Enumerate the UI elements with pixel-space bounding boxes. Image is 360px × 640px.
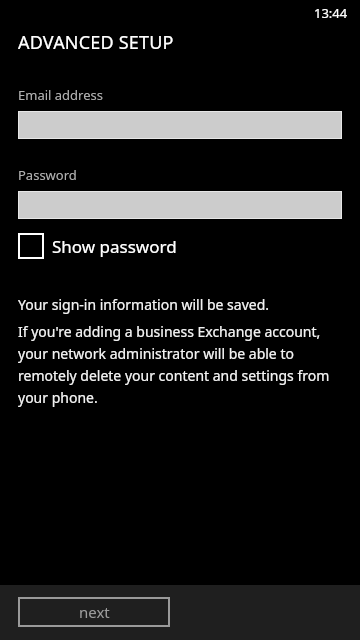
staticText: 13:44: [314, 4, 348, 22]
staticText: If you're adding a business Exchange acc…: [18, 322, 342, 407]
staticText: next: [79, 602, 110, 622]
staticText: Password: [18, 166, 77, 184]
button[interactable]: next: [18, 597, 170, 627]
staticText: ADVANCED SETUP: [18, 30, 174, 55]
staticText: Email address: [18, 86, 103, 104]
staticText: Your sign-in information will be saved.: [18, 295, 270, 314]
staticText: Show password: [52, 235, 177, 258]
button[interactable]: Show password: [18, 233, 183, 259]
